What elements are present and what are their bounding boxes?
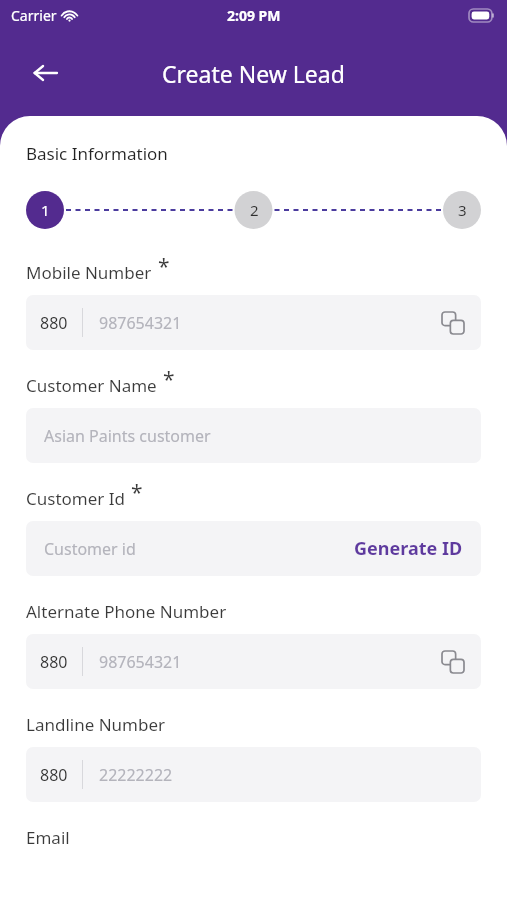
button[interactable]: 1 — [26, 191, 64, 229]
staticText: Customer id — [44, 538, 136, 560]
button[interactable]: Generate ID — [350, 532, 467, 565]
staticText: 1 — [41, 200, 50, 220]
staticText: 880 — [40, 312, 68, 334]
button[interactable]: 2 — [235, 191, 273, 229]
staticText: 22222222 — [99, 764, 173, 786]
staticText: Customer Name — [26, 374, 157, 397]
staticText: 987654321 — [99, 312, 182, 334]
staticText: 2:09 PM — [227, 6, 281, 25]
staticText: Alternate Phone Number — [26, 600, 227, 623]
button[interactable]: 880 — [26, 747, 481, 802]
staticText: * — [131, 478, 143, 507]
staticText: Email — [26, 826, 70, 849]
staticText: 987654321 — [99, 651, 182, 673]
staticText: 3 — [458, 200, 467, 220]
staticText: Create New Lead — [162, 58, 345, 89]
staticText: Generate ID — [354, 536, 463, 561]
staticText: Carrier — [11, 6, 57, 25]
button[interactable]: Copy — [433, 303, 473, 343]
staticText: Customer Id — [26, 487, 125, 510]
staticText: Mobile Number — [26, 261, 152, 284]
staticText: 880 — [40, 651, 68, 673]
staticText: 880 — [40, 764, 68, 786]
button[interactable]: Customer id — [26, 521, 481, 576]
button[interactable]: Copy — [433, 642, 473, 682]
staticText: Landline Number — [26, 713, 166, 736]
staticText: * — [163, 365, 175, 394]
staticText: Asian Paints customer — [44, 425, 211, 447]
button[interactable]: 3 — [443, 191, 481, 229]
staticText: * — [158, 252, 170, 281]
button[interactable]: 880 — [26, 295, 481, 350]
button[interactable]: 880 — [26, 634, 481, 689]
button[interactable]: Asian Paints customer — [26, 408, 481, 463]
button[interactable]: Back — [24, 52, 66, 94]
staticText: 2 — [250, 200, 259, 220]
staticText: Basic Information — [26, 142, 168, 165]
